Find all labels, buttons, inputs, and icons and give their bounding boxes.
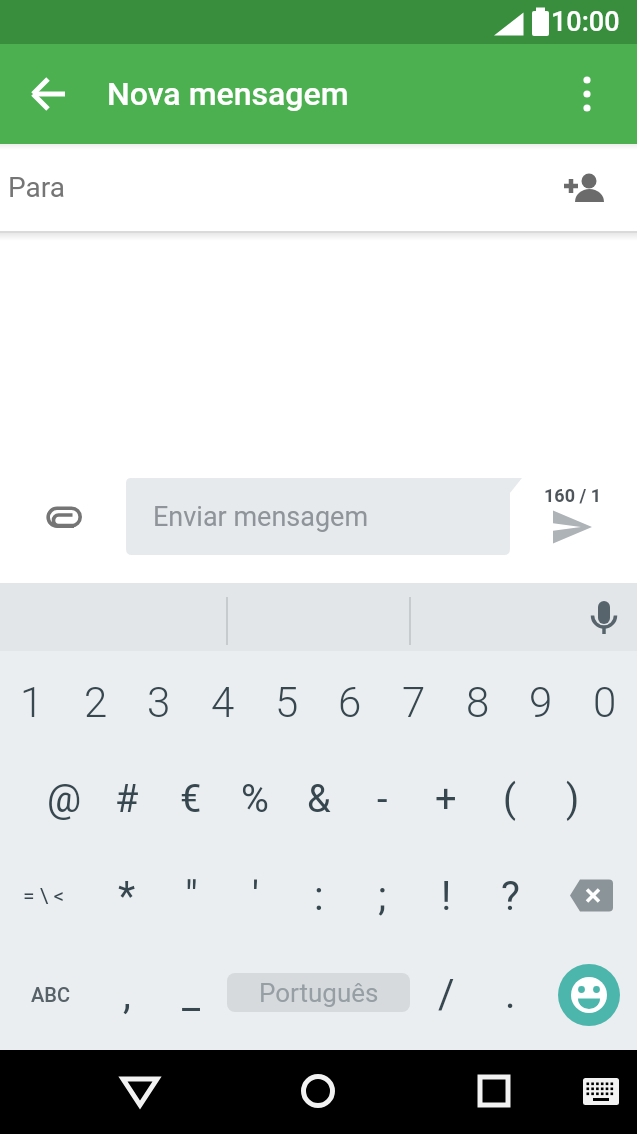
staticText: 10:00: [551, 6, 620, 38]
staticText: &: [307, 777, 331, 822]
staticText: !: [441, 873, 452, 920]
staticText: Enviar mensagem: [153, 501, 369, 533]
staticText: Nova mensagem: [107, 75, 349, 113]
staticText: ': [252, 873, 259, 920]
button[interactable]: [467, 1064, 521, 1118]
staticText: 2: [84, 678, 108, 727]
staticText: Para: [8, 171, 65, 204]
button[interactable]: #: [95, 751, 159, 848]
button[interactable]: [291, 1064, 345, 1118]
button[interactable]: [113, 1064, 167, 1118]
staticText: -: [377, 777, 388, 822]
staticText: 6: [338, 678, 362, 727]
staticText: ": [185, 873, 198, 920]
button[interactable]: [546, 503, 598, 551]
button[interactable]: ABC: [10, 946, 90, 1043]
staticText: 7: [402, 678, 426, 727]
button[interactable]: 2: [64, 654, 128, 751]
button[interactable]: [22, 67, 76, 121]
button[interactable]: [559, 847, 623, 944]
button[interactable]: 8: [446, 654, 510, 751]
button[interactable]: 0: [573, 654, 637, 751]
button[interactable]: 9: [509, 654, 573, 751]
staticText: /: [438, 971, 455, 1018]
staticText: ABC: [31, 983, 70, 1006]
button[interactable]: _: [159, 946, 223, 1043]
staticText: €: [180, 777, 202, 822]
staticText: %: [241, 777, 269, 822]
button[interactable]: [37, 491, 91, 545]
button[interactable]: [563, 70, 611, 118]
staticText: 160 / 1: [544, 485, 602, 506]
button[interactable]: *: [95, 848, 159, 945]
staticText: (: [503, 777, 517, 822]
button[interactable]: 3: [127, 654, 191, 751]
staticText: = \ <: [23, 884, 65, 909]
staticText: ): [566, 777, 580, 822]
staticText: *: [118, 873, 136, 920]
button[interactable]: ": [159, 848, 223, 945]
button[interactable]: 4: [191, 654, 255, 751]
staticText: 8: [466, 678, 490, 727]
button[interactable]: +: [414, 751, 478, 848]
button[interactable]: 6: [318, 654, 382, 751]
button[interactable]: ;: [350, 848, 414, 945]
button[interactable]: €: [159, 751, 223, 848]
button[interactable]: @: [32, 751, 96, 848]
staticText: +: [435, 777, 457, 822]
staticText: :: [314, 873, 324, 920]
staticText: ,: [123, 971, 131, 1018]
button[interactable]: 7: [382, 654, 446, 751]
button[interactable]: 5: [255, 654, 319, 751]
button[interactable]: !: [414, 848, 478, 945]
button[interactable]: %: [223, 751, 287, 848]
button[interactable]: Português: [227, 973, 410, 1012]
button[interactable]: Para: [0, 144, 637, 231]
staticText: Português: [259, 978, 379, 1008]
button[interactable]: ,: [95, 946, 159, 1043]
staticText: .: [505, 971, 516, 1018]
button[interactable]: = \ <: [4, 848, 84, 945]
button[interactable]: ': [223, 848, 287, 945]
staticText: 1: [20, 678, 44, 727]
button[interactable]: &: [287, 751, 351, 848]
button[interactable]: [558, 964, 620, 1026]
staticText: _: [182, 971, 201, 1018]
button[interactable]: /: [414, 946, 478, 1043]
button[interactable]: Enviar mensagem: [126, 478, 523, 555]
button[interactable]: ): [541, 751, 605, 848]
staticText: ;: [378, 873, 387, 920]
staticText: 3: [147, 678, 171, 727]
button[interactable]: -: [350, 751, 414, 848]
button[interactable]: :: [287, 848, 351, 945]
staticText: 9: [529, 678, 553, 727]
button[interactable]: 1: [0, 654, 64, 751]
staticText: #: [115, 777, 139, 822]
staticText: 0: [593, 678, 617, 727]
button[interactable]: (: [478, 751, 542, 848]
button[interactable]: ?: [478, 848, 542, 945]
button[interactable]: [574, 1064, 628, 1118]
staticText: 4: [211, 678, 235, 727]
button[interactable]: [557, 160, 613, 216]
staticText: ?: [501, 873, 520, 920]
button[interactable]: .: [478, 946, 542, 1043]
button[interactable]: [577, 590, 631, 644]
staticText: @: [47, 777, 82, 822]
staticText: 5: [275, 678, 299, 727]
